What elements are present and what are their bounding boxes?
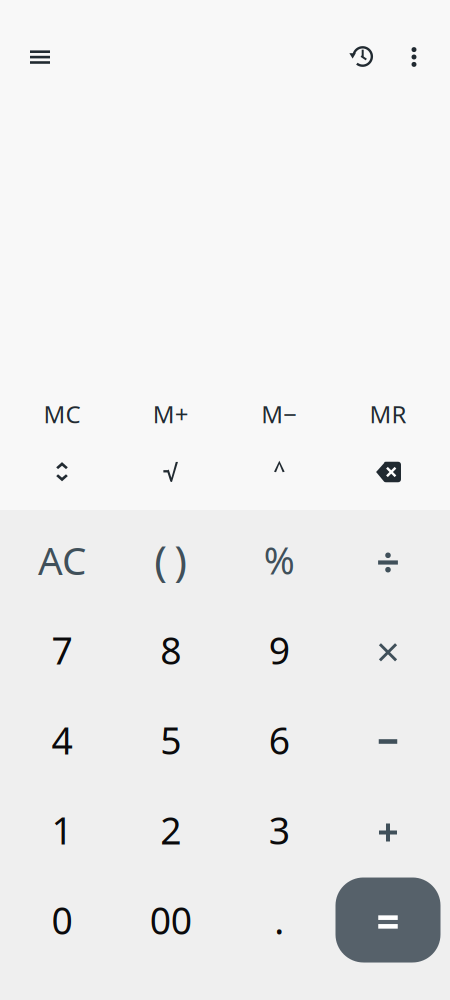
staticText: 6	[269, 715, 290, 765]
button[interactable]: MR	[334, 393, 442, 435]
staticText: 5	[160, 715, 181, 765]
button[interactable]: Square root	[116, 449, 225, 495]
button[interactable]: %	[225, 515, 334, 605]
staticText: MR	[369, 398, 406, 430]
staticText: ( )	[154, 532, 187, 588]
button[interactable]: 7	[8, 605, 116, 695]
button[interactable]: Menu	[13, 34, 67, 78]
staticText: 9	[269, 625, 290, 675]
staticText: %	[264, 535, 295, 585]
button[interactable]: Expand	[8, 449, 116, 495]
button[interactable]: 00	[116, 875, 225, 965]
staticText: 8	[160, 625, 181, 675]
button[interactable]: 2	[116, 785, 225, 875]
button[interactable]: History	[338, 34, 390, 78]
staticText: 00	[150, 895, 192, 945]
button[interactable]: Equals	[334, 875, 442, 965]
staticText: 4	[51, 715, 72, 765]
staticText: 1	[51, 805, 72, 855]
button[interactable]: 8	[116, 605, 225, 695]
button[interactable]: M+	[116, 393, 225, 435]
button[interactable]: 0	[8, 875, 116, 965]
button[interactable]: 3	[225, 785, 334, 875]
button[interactable]: .	[225, 875, 334, 965]
staticText: AC	[38, 534, 86, 586]
staticText: 7	[51, 625, 72, 675]
button[interactable]: Divide	[334, 515, 442, 605]
button[interactable]: MC	[8, 393, 116, 435]
button[interactable]: ( )	[116, 515, 225, 605]
button[interactable]: 4	[8, 695, 116, 785]
staticText: MC	[43, 398, 80, 430]
button[interactable]: 6	[225, 695, 334, 785]
button[interactable]: More options	[390, 34, 436, 78]
staticText: 0	[51, 895, 72, 945]
staticText: M−	[261, 398, 297, 430]
staticText: 3	[269, 805, 290, 855]
button[interactable]: Power	[225, 449, 334, 495]
button[interactable]: 1	[8, 785, 116, 875]
staticText: 2	[160, 805, 181, 855]
button[interactable]: AC	[8, 515, 116, 605]
staticText: .	[274, 895, 284, 945]
button[interactable]: Subtract	[334, 695, 442, 785]
button[interactable]: Backspace	[334, 449, 442, 495]
button[interactable]: M−	[225, 393, 334, 435]
staticText: M+	[153, 398, 189, 430]
button[interactable]: Add	[334, 785, 442, 875]
button[interactable]: 5	[116, 695, 225, 785]
button[interactable]: 9	[225, 605, 334, 695]
button[interactable]: Multiply	[334, 605, 442, 695]
